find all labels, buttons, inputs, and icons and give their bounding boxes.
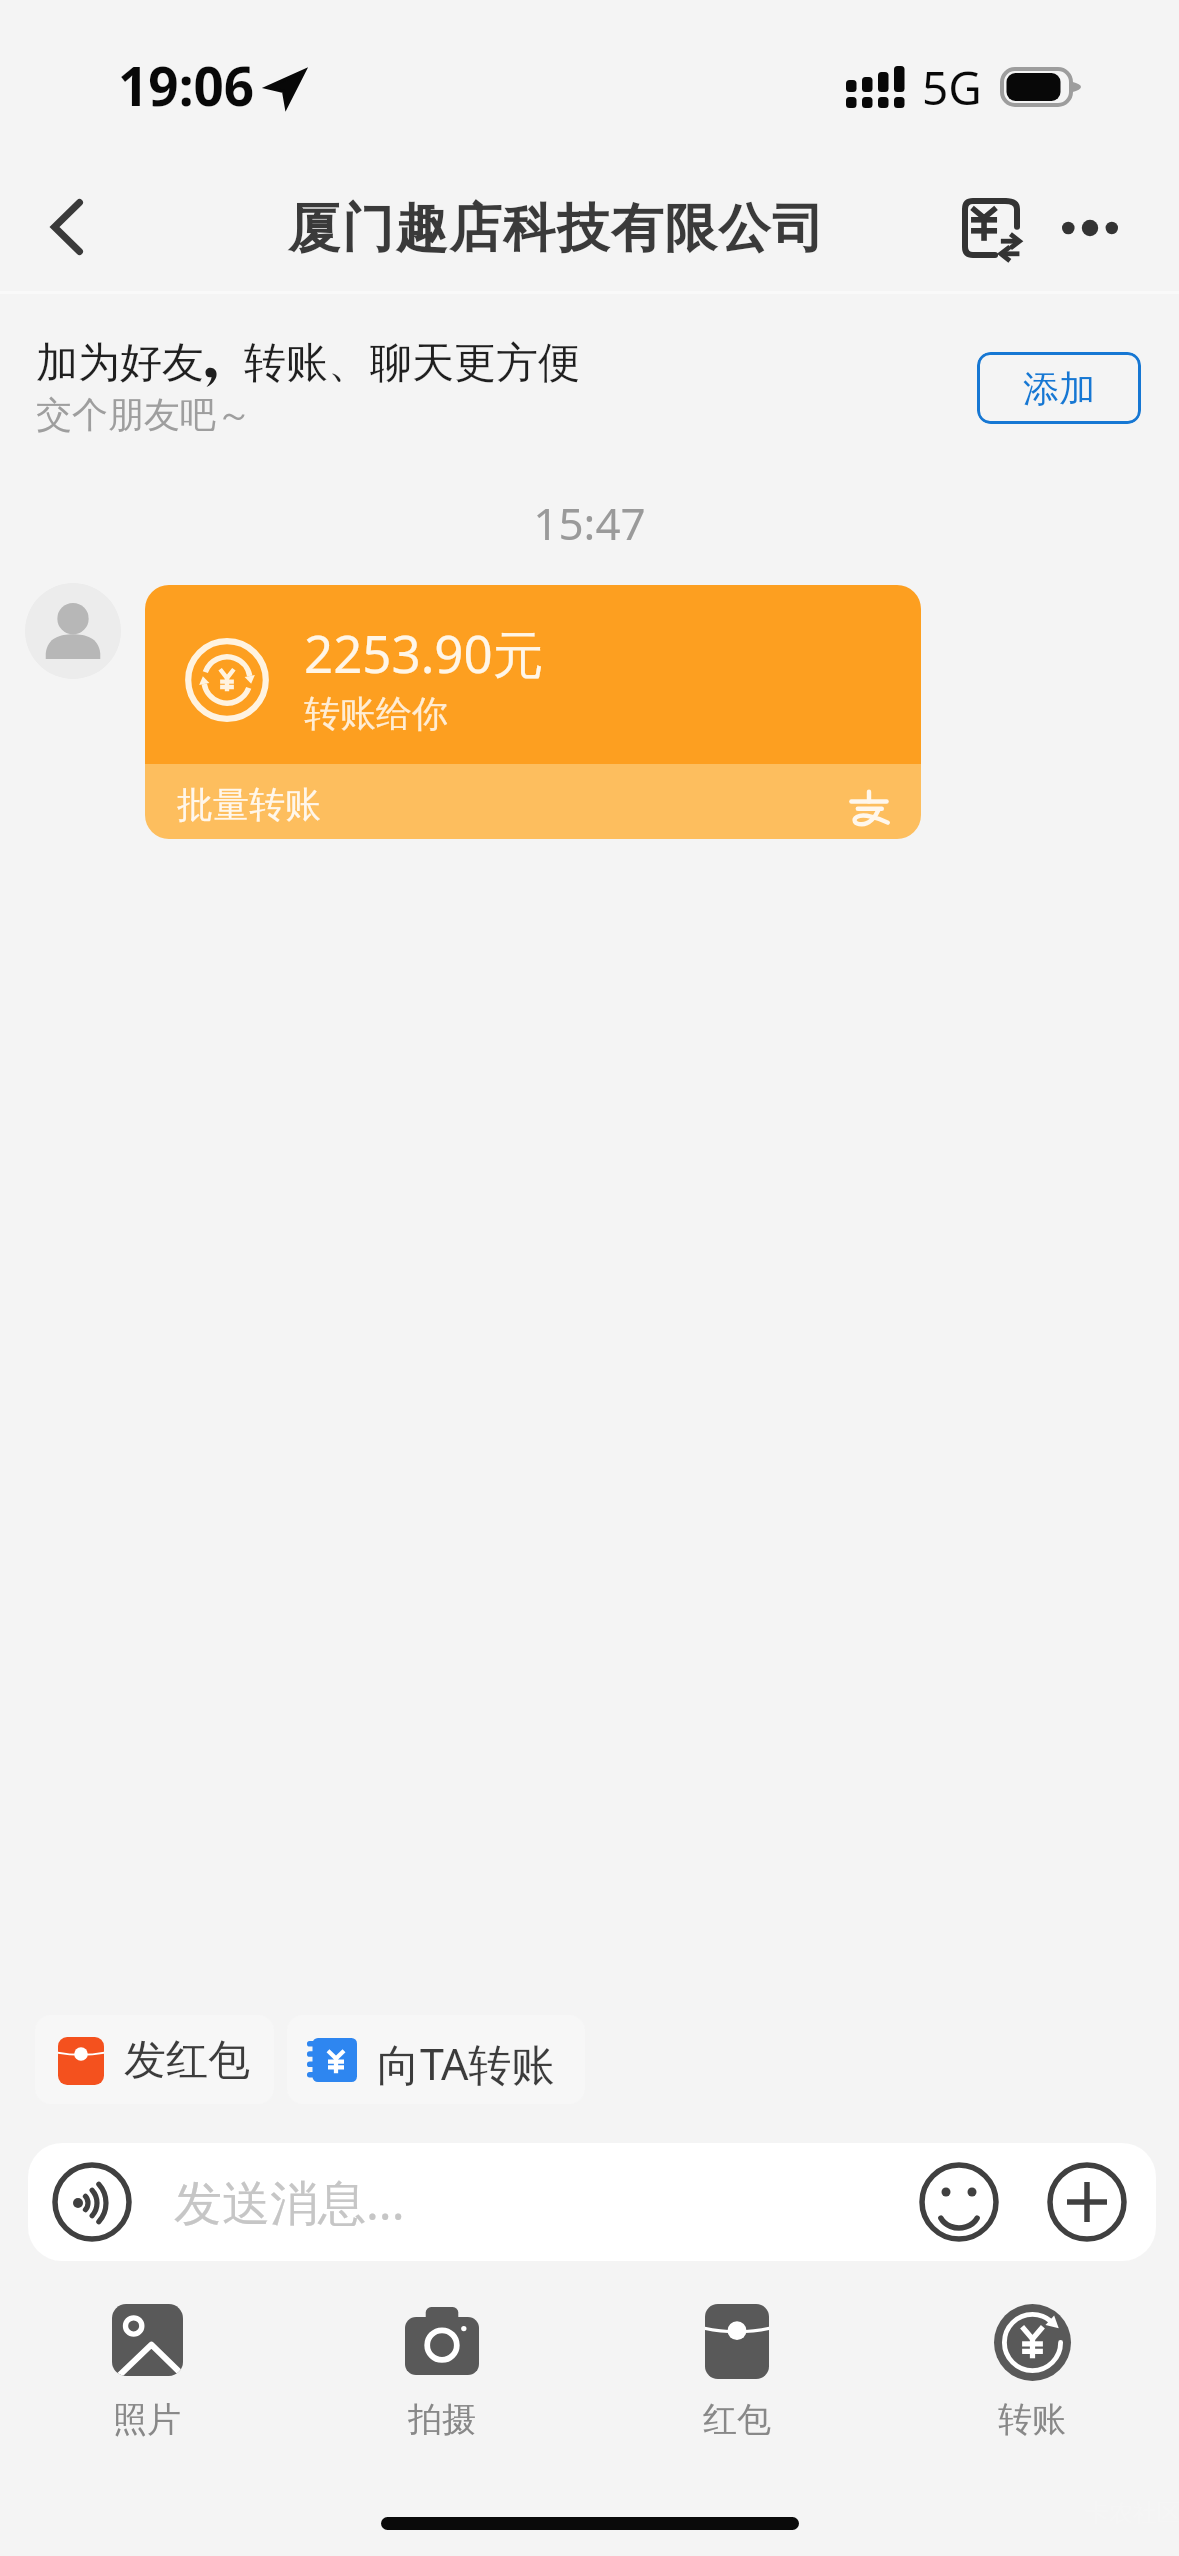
staticText: 厦门趣店科技有限公司 (287, 196, 825, 262)
staticText: 15:47 (0, 493, 1179, 553)
staticText: 批量转账 (177, 782, 321, 827)
staticText: 添加 (1023, 366, 1095, 411)
staticText: 转账给你 (304, 691, 448, 736)
staticText: 向TA转账 (377, 2034, 555, 2093)
staticText: 加为好友 (36, 337, 204, 390)
button[interactable]: 红包 (627, 2290, 847, 2460)
button[interactable]: Back (24, 184, 110, 270)
button[interactable]: Transfer record (948, 184, 1034, 272)
staticText: 拍摄 (408, 2398, 476, 2441)
button[interactable]: 向TA转账 (287, 2015, 585, 2104)
button[interactable]: Voice message (52, 2162, 132, 2242)
staticText: 转账、聊天更方便 (244, 337, 580, 390)
staticText: 转账 (998, 2398, 1066, 2441)
button[interactable]: 照片 (37, 2290, 257, 2460)
staticText: 2253.90元 (304, 618, 544, 688)
staticText: 照片 (113, 2398, 181, 2441)
button[interactable]: More options (1047, 2162, 1127, 2242)
button[interactable]: 发红包 (35, 2015, 274, 2104)
staticText: 交个朋友吧～ (36, 392, 252, 437)
button[interactable]: Emoji (919, 2162, 999, 2242)
staticText: 红包 (703, 2398, 771, 2441)
staticText: 发红包 (124, 2034, 250, 2087)
button[interactable]: 拍摄 (332, 2290, 552, 2460)
button[interactable]: 转账 (922, 2290, 1142, 2460)
button[interactable]: 添加 (977, 352, 1141, 424)
button[interactable]: 2253.90元 (145, 585, 921, 839)
staticText: 发送消息... (174, 2169, 405, 2235)
button[interactable]: Avatar (25, 583, 121, 679)
staticText: 5G (922, 56, 982, 119)
staticText: 19:06 (118, 49, 255, 121)
button[interactable]: More (1047, 184, 1133, 272)
